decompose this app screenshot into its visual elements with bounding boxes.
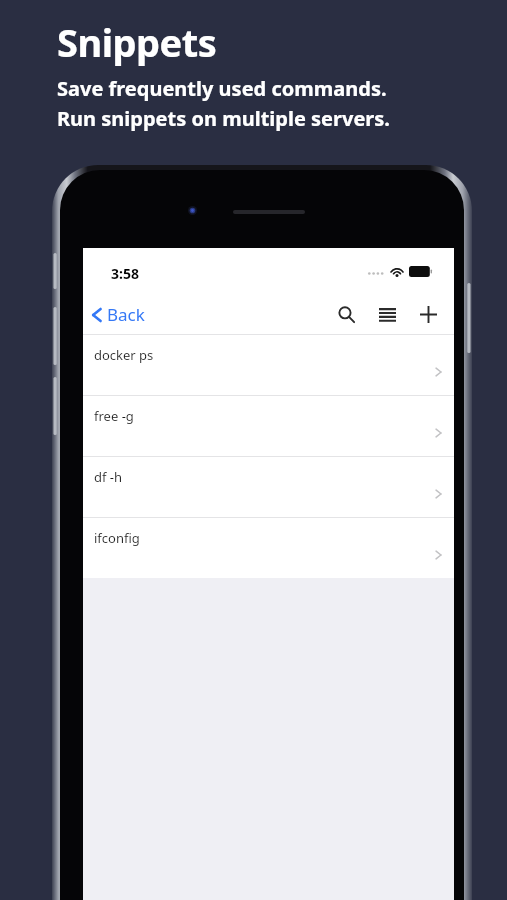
staticText: Save frequently used commands. [57,75,387,102]
button[interactable]: List options [367,300,408,330]
staticText: free -g [94,407,134,425]
button[interactable]: Search [326,298,367,331]
staticText: Back [107,303,145,326]
button[interactable]: Back [83,299,155,330]
button[interactable]: free -g [83,396,454,456]
staticText: 3:58 [111,264,139,283]
button[interactable]: Add snippet [408,298,454,331]
staticText: Snippets [57,16,217,68]
button[interactable]: docker ps [83,335,454,395]
staticText: docker ps [94,346,154,364]
button[interactable]: df -h [83,457,454,517]
staticText: ifconfig [94,529,140,547]
staticText: Run snippets on multiple servers. [57,105,390,132]
staticText: df -h [94,468,123,486]
button[interactable]: ifconfig [83,518,454,578]
